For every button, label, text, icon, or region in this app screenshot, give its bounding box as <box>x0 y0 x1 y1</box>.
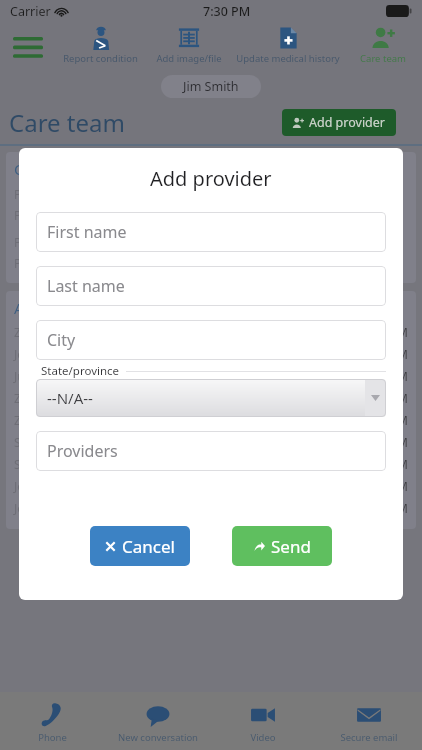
staticText: Carrier <box>10 3 51 20</box>
button[interactable]: Joy Irwin <box>14 500 408 516</box>
staticText: Joy Irwin <box>14 500 63 516</box>
button[interactable]: Phone <box>0 692 105 750</box>
button[interactable]: Jon Hill <box>14 478 408 494</box>
staticText: Update medical history <box>236 52 340 65</box>
button[interactable]: Add image/file <box>145 22 233 72</box>
staticText: Last name <box>47 275 125 297</box>
staticText: M <box>397 412 408 428</box>
staticText: First name <box>47 221 127 243</box>
staticText: 7:30 PM <box>203 3 251 20</box>
staticText: --N/A-- <box>47 388 93 408</box>
button[interactable]: Zoe Davis <box>14 390 408 406</box>
staticText: Zane Evans <box>14 412 78 428</box>
button[interactable]: Cancel <box>90 526 190 566</box>
staticText: Care team <box>9 106 125 139</box>
button[interactable]: Update medical history <box>233 22 343 72</box>
staticText: Primary care <box>14 207 86 223</box>
staticText: M <box>397 500 408 516</box>
button[interactable]: Last name <box>36 266 386 306</box>
staticText: M <box>397 324 408 340</box>
button[interactable]: Menu <box>0 22 56 72</box>
button[interactable]: Sam Foster <box>14 434 408 450</box>
button[interactable]: Send <box>232 526 332 566</box>
staticText: Jon Hill <box>14 478 54 494</box>
staticText: M <box>397 478 408 494</box>
staticText: Secure email <box>340 731 398 744</box>
button[interactable]: Add provider <box>282 109 396 136</box>
staticText: Zoe Davis <box>14 390 69 406</box>
staticText: Cancel <box>122 535 175 558</box>
staticText: Report condition <box>63 52 138 65</box>
staticText: Care team <box>360 52 406 65</box>
button[interactable]: Zachary Allen <box>14 324 408 340</box>
staticText: Add image/file <box>156 52 222 65</box>
button[interactable]: Zane Evans <box>14 412 408 428</box>
staticText: Pharmacy <box>14 234 71 250</box>
staticText: Video <box>250 731 276 744</box>
staticText: Providers <box>47 440 118 462</box>
staticText: M <box>397 368 408 384</box>
staticText: Jim Smith <box>183 78 239 95</box>
staticText: Add provider <box>309 114 386 131</box>
staticText: Zachary Allen <box>14 324 90 340</box>
staticText: John Baker <box>14 346 76 362</box>
button[interactable]: City <box>36 320 386 360</box>
staticText: Primary care <box>14 186 86 202</box>
staticText: City <box>47 329 76 351</box>
button[interactable]: Care team <box>343 22 422 72</box>
button[interactable]: First name <box>36 212 386 252</box>
button[interactable]: Julia Carter <box>14 368 408 384</box>
staticText: M <box>397 456 408 472</box>
staticText: State/province <box>41 363 120 379</box>
staticText: Sam Foster <box>14 434 77 450</box>
staticText: All providers <box>14 298 102 318</box>
button[interactable]: Jim Smith <box>161 75 261 98</box>
staticText: Add provider <box>150 165 272 192</box>
button[interactable]: New conversation <box>105 692 210 750</box>
button[interactable]: Secure email <box>316 692 422 750</box>
staticText: Sara Grant <box>14 456 74 472</box>
staticText: Phone <box>38 731 67 744</box>
button[interactable]: Providers <box>36 431 386 471</box>
staticText: M <box>397 346 408 362</box>
staticText: M <box>397 434 408 450</box>
button[interactable]: --N/A-- <box>36 379 386 417</box>
staticText: Pharmacy <box>14 255 71 271</box>
button[interactable]: Report condition <box>56 22 145 72</box>
button[interactable]: John Baker <box>14 346 408 362</box>
button[interactable]: Sara Grant <box>14 456 408 472</box>
staticText: Send <box>271 535 311 558</box>
button[interactable]: Video <box>210 692 316 750</box>
staticText: Julia Carter <box>14 368 77 384</box>
staticText: M <box>397 390 408 406</box>
staticText: New conversation <box>118 731 198 744</box>
staticText: Care team <box>14 159 87 179</box>
